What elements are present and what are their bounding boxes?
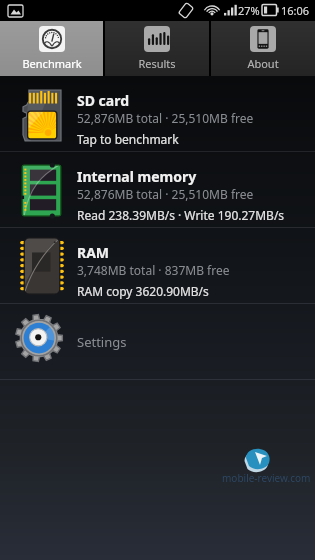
staticText: 27%	[238, 3, 260, 18]
staticText: Read 238.39MB/s · Write 190.27MB/s	[77, 207, 285, 223]
staticText: Tap to benchmark	[77, 131, 179, 147]
button[interactable]: Benchmark	[0, 21, 103, 76]
button[interactable]: Settings	[0, 304, 315, 379]
staticText: SD card	[77, 91, 130, 110]
staticText: 16:06	[281, 3, 310, 18]
button[interactable]: Results	[105, 21, 209, 76]
button[interactable]: About	[211, 21, 315, 76]
staticText: Settings	[77, 333, 127, 351]
staticText: 52,876MB total · 25,510MB free	[77, 110, 254, 126]
button[interactable]: SD card	[0, 76, 315, 151]
staticText: Internal memory	[77, 167, 197, 186]
staticText: About	[247, 56, 279, 71]
staticText: RAM copy 3620.90MB/s	[77, 283, 209, 299]
staticText: 52,876MB total · 25,510MB free	[77, 186, 254, 202]
staticText: 3,748MB total · 837MB free	[77, 262, 230, 278]
button[interactable]: Internal memory	[0, 152, 315, 227]
staticText: Benchmark	[22, 56, 82, 71]
button[interactable]: RAM	[0, 228, 315, 303]
staticText: mobile-review.com	[222, 471, 311, 485]
staticText: Results	[138, 56, 176, 71]
staticText: RAM	[77, 243, 110, 262]
